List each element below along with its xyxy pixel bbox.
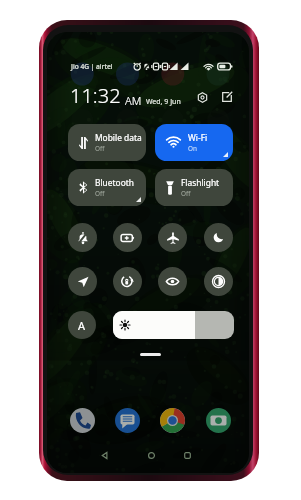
button[interactable]: Mobile data	[68, 124, 146, 161]
staticText: Off	[95, 189, 105, 198]
staticText: Mobile data	[95, 132, 142, 143]
button[interactable]: Settings	[195, 90, 209, 104]
button[interactable]: Chrome	[160, 408, 185, 433]
staticText: Off	[95, 144, 105, 153]
staticText: 11:32	[70, 82, 121, 109]
button[interactable]: Home	[145, 449, 157, 461]
button[interactable]	[113, 311, 234, 339]
button[interactable]: Invert colours	[204, 267, 233, 296]
button[interactable]: Back	[98, 449, 110, 461]
button[interactable]: Wi-Fi	[155, 124, 233, 161]
button[interactable]: Phone	[70, 408, 95, 433]
button[interactable]: Location	[68, 267, 97, 296]
button[interactable]: Edit tiles	[220, 90, 234, 104]
button[interactable]: Recents	[181, 449, 193, 461]
button[interactable]: Auto brightness	[68, 311, 96, 339]
button[interactable]: Mute	[68, 223, 97, 252]
staticText: Bluetooth	[95, 177, 134, 188]
staticText: AM	[125, 93, 142, 108]
button[interactable]: Camera	[206, 408, 231, 433]
staticText: On	[188, 144, 197, 153]
staticText: Wed, 9 Jun	[146, 97, 181, 107]
staticText: Jio 4G | airtel	[71, 62, 113, 71]
button[interactable]: Auto rotate	[113, 267, 142, 296]
staticText: Wi-Fi	[188, 132, 208, 143]
staticText: A	[78, 318, 86, 333]
staticText: Flashlight	[181, 177, 220, 188]
button[interactable]: Airplane mode	[158, 223, 187, 252]
button[interactable]: Messages	[115, 408, 140, 433]
button[interactable]: Flashlight	[155, 169, 233, 206]
button[interactable]: Eye comfort	[158, 267, 187, 296]
button[interactable]: Do not disturb	[204, 223, 233, 252]
staticText: Off	[181, 189, 191, 198]
button[interactable]: Bluetooth	[68, 169, 146, 206]
button[interactable]: Battery saver	[113, 223, 142, 252]
